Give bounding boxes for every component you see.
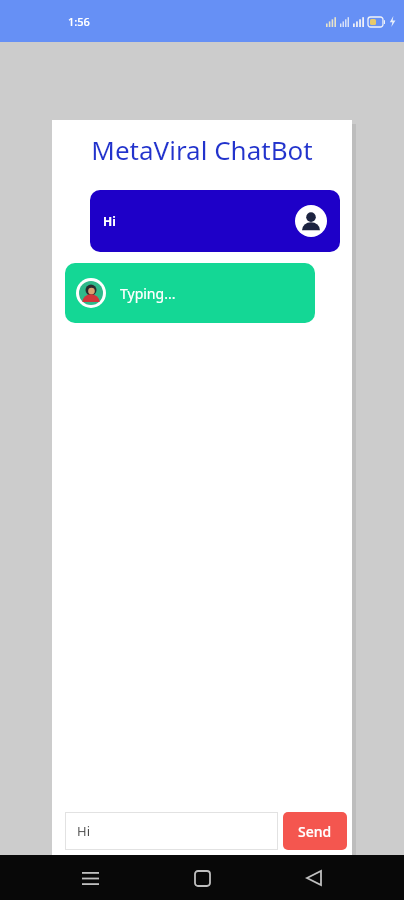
staticText: 1:56 <box>68 14 90 29</box>
button[interactable]: Hi <box>90 190 340 252</box>
staticText: Send <box>298 822 332 841</box>
button[interactable]: Hi <box>65 812 278 850</box>
button[interactable]: Recent apps <box>70 858 110 898</box>
staticText: Hi <box>77 822 90 840</box>
staticText: Hi <box>103 213 116 229</box>
button[interactable]: Back <box>294 858 334 898</box>
button[interactable]: Home <box>182 858 222 898</box>
other: User avatar <box>295 205 327 237</box>
button[interactable]: Bot avatar <box>65 263 315 323</box>
staticText: MetaViral ChatBot <box>62 132 342 167</box>
button[interactable]: Send <box>283 812 347 850</box>
staticText: Typing... <box>120 284 176 303</box>
other: Bot avatar <box>76 278 106 308</box>
